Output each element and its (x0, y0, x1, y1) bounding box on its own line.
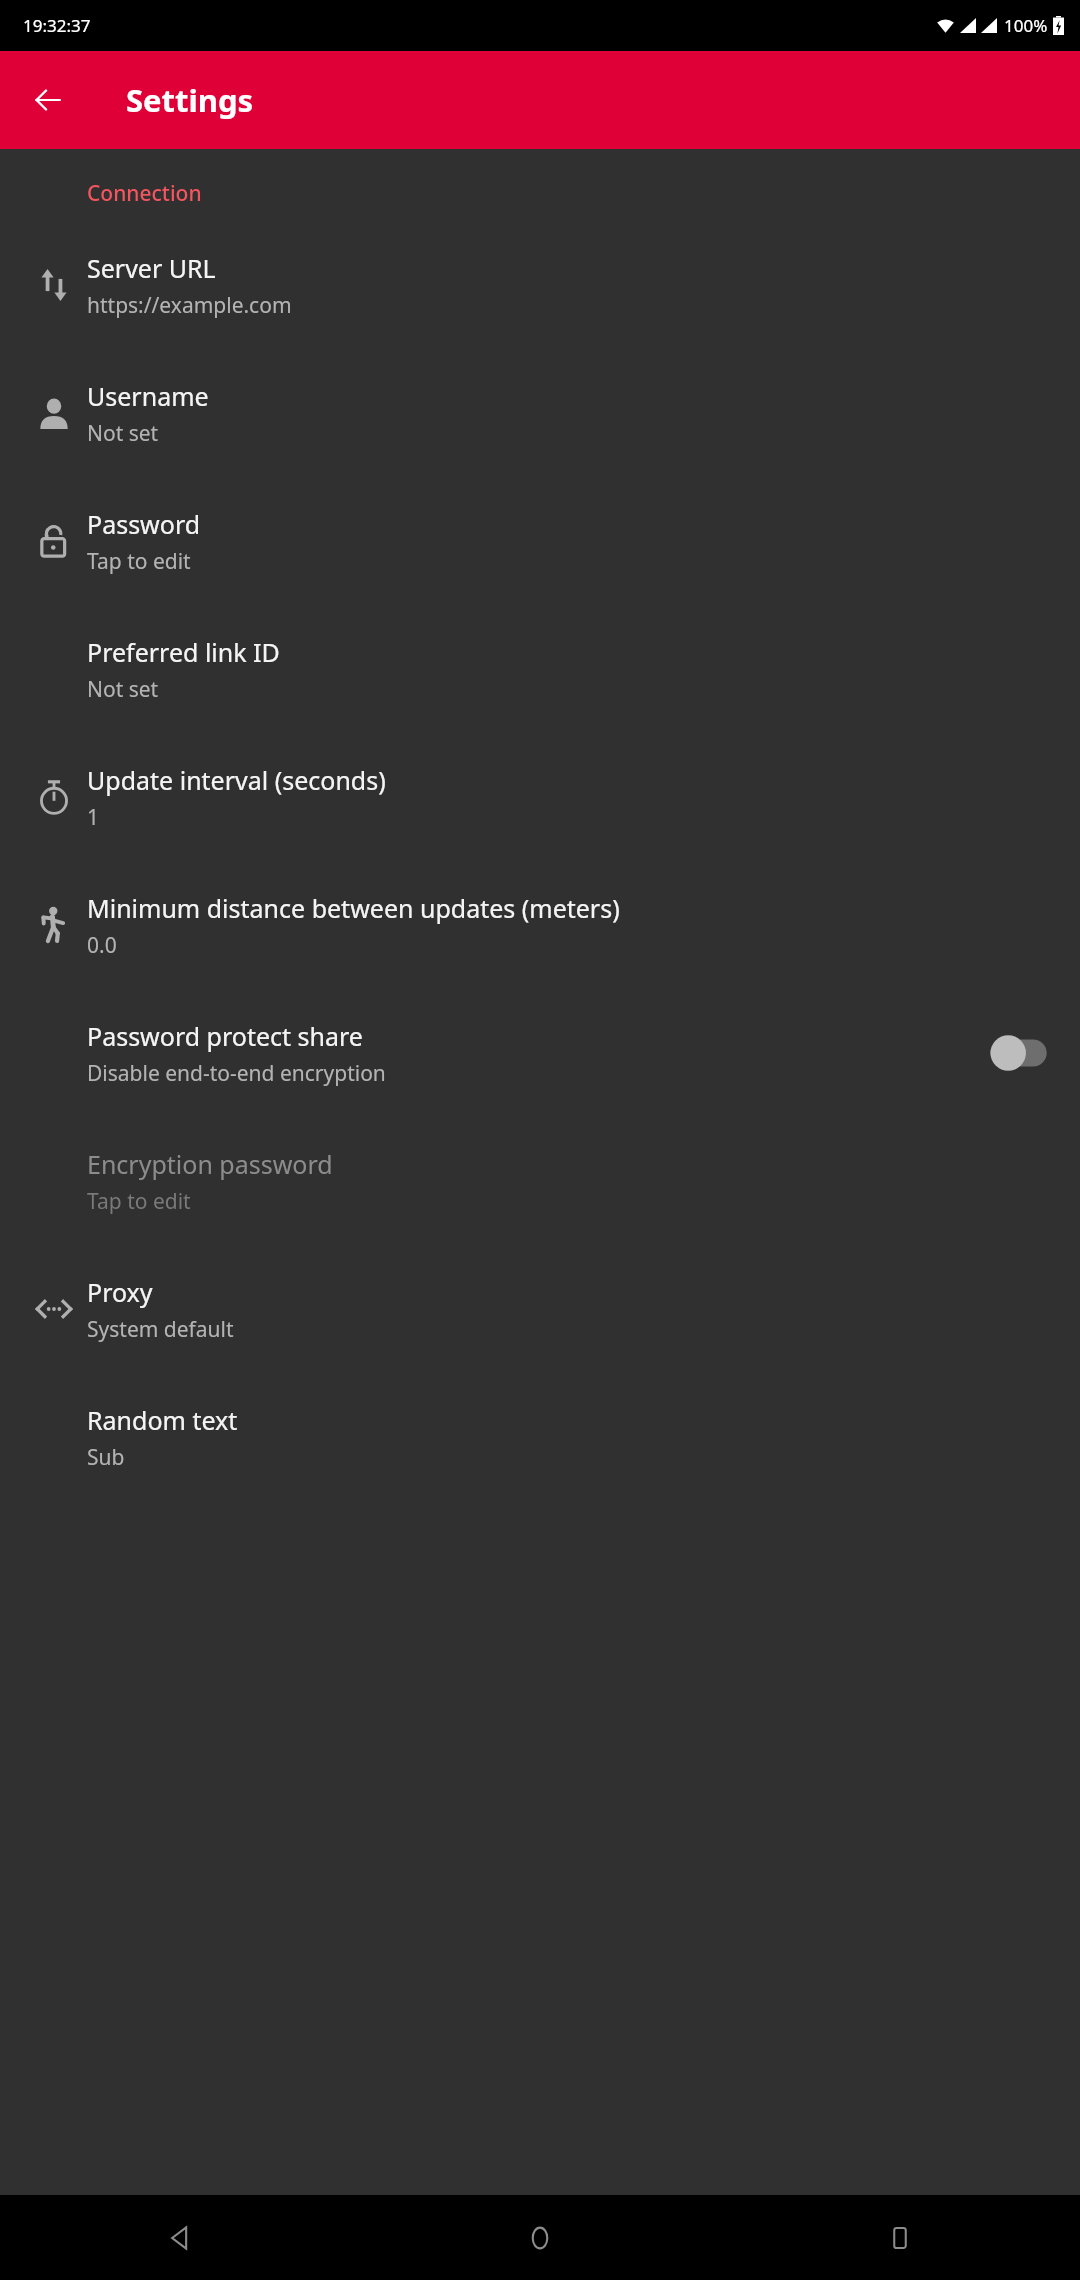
button[interactable]: Username (0, 349, 1080, 477)
button[interactable]: Back (0, 2195, 360, 2280)
button[interactable]: Password protect share (0, 989, 1080, 1117)
button[interactable]: Minimum distance between updates (meters… (0, 861, 1080, 989)
staticText: Random text (87, 1403, 238, 1437)
staticText: Settings (126, 79, 254, 121)
button[interactable]: Proxy (0, 1245, 1080, 1373)
staticText: Not set (87, 675, 159, 704)
staticText: Server URL (87, 251, 216, 285)
staticText: Tap to edit (87, 547, 191, 576)
staticText: Connection (87, 179, 202, 208)
staticText: 1 (87, 803, 100, 832)
button[interactable]: Preferred link ID (0, 605, 1080, 733)
staticText: 100% (1004, 14, 1048, 37)
button[interactable]: Random text (0, 1373, 1080, 1501)
button[interactable]: Password (0, 477, 1080, 605)
staticText: Sub (87, 1443, 125, 1472)
button[interactable]: Encryption password (0, 1117, 1080, 1245)
staticText: Not set (87, 419, 159, 448)
staticText: Proxy (87, 1275, 153, 1309)
staticText: Minimum distance between updates (meters… (87, 891, 620, 925)
staticText: Disable end-to-end encryption (87, 1059, 386, 1088)
staticText: 0.0 (87, 931, 117, 960)
button[interactable]: Password protect share toggle (986, 1029, 1060, 1077)
button[interactable]: Server URL (0, 221, 1080, 349)
staticText: Username (87, 379, 209, 413)
button[interactable]: Home (360, 2195, 720, 2280)
staticText: Preferred link ID (87, 635, 280, 669)
staticText: 19:32:37 (23, 14, 91, 37)
button[interactable]: Recent apps (720, 2195, 1080, 2280)
staticText: Password (87, 507, 201, 541)
staticText: https://example.com (87, 291, 292, 320)
staticText: Update interval (seconds) (87, 763, 386, 797)
staticText: System default (87, 1315, 234, 1344)
staticText: Password protect share (87, 1019, 363, 1053)
staticText: Tap to edit (87, 1187, 191, 1216)
staticText: Encryption password (87, 1147, 333, 1181)
button[interactable]: Back (24, 76, 72, 124)
button[interactable]: Update interval (seconds) (0, 733, 1080, 861)
